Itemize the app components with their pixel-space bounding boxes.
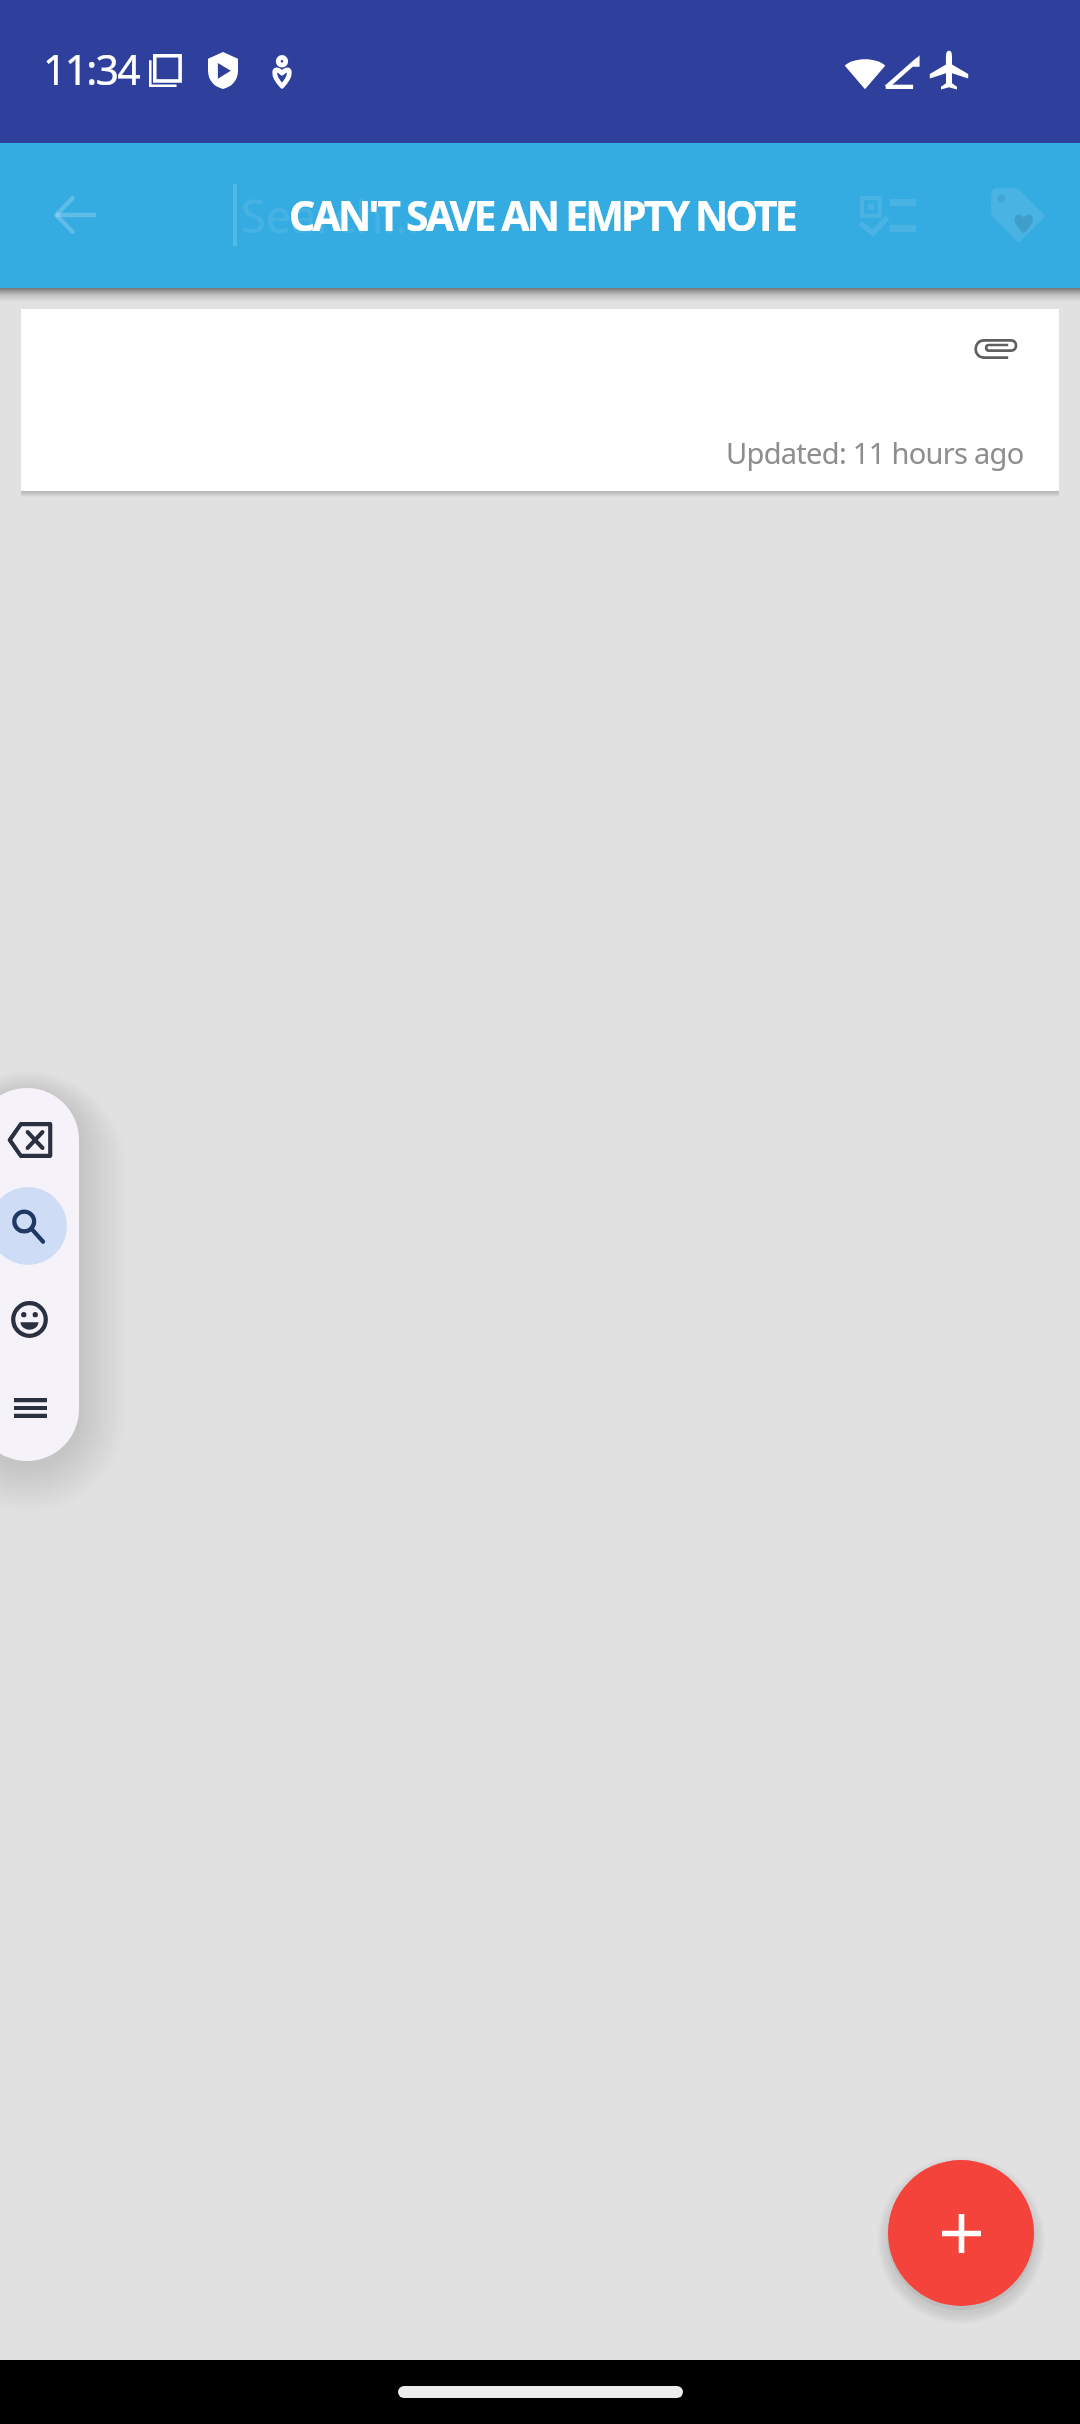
button[interactable]: Backspace — [0, 1100, 70, 1180]
button[interactable]: Labels — [957, 155, 1077, 275]
staticText: CAN'T SAVE AN EMPTY NOTE — [289, 187, 795, 243]
button[interactable]: Search — [0, 1187, 67, 1265]
staticText: Updated: 11 hours ago — [726, 433, 1024, 472]
button[interactable]: Back — [15, 155, 135, 275]
button[interactable]: Add note — [888, 2160, 1034, 2306]
staticText: Search... — [241, 185, 420, 246]
button[interactable]: Keyboard menu — [0, 1370, 68, 1446]
button[interactable]: Updated: 11 hours ago — [21, 309, 1059, 491]
button[interactable]: Checklist — [828, 155, 948, 275]
staticText: 11:34 — [43, 41, 139, 97]
button[interactable]: Emoji — [0, 1281, 67, 1357]
